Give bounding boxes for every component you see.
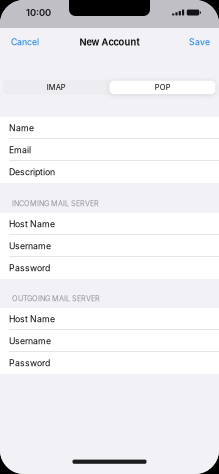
- staticText: Cancel: [11, 37, 39, 47]
- button[interactable]: Password: [0, 257, 219, 279]
- button[interactable]: IMAP: [3, 80, 109, 95]
- staticText: Name: [9, 123, 34, 133]
- staticText: New Account: [79, 36, 139, 48]
- staticText: INCOMING MAIL SERVER: [12, 199, 99, 208]
- button[interactable]: Password: [0, 352, 219, 374]
- staticText: Password: [9, 358, 50, 368]
- staticText: POP: [155, 83, 171, 92]
- staticText: Email: [9, 145, 31, 155]
- button[interactable]: Username: [0, 235, 219, 257]
- staticText: Save: [189, 37, 210, 47]
- staticText: Username: [9, 336, 51, 346]
- button[interactable]: Cancel: [0, 28, 47, 56]
- button[interactable]: Host Name: [0, 308, 219, 330]
- button[interactable]: Email: [0, 139, 219, 161]
- button[interactable]: Host Name: [0, 213, 219, 235]
- staticText: IMAP: [47, 83, 66, 92]
- button[interactable]: Username: [0, 330, 219, 352]
- staticText: Username: [9, 241, 51, 251]
- button[interactable]: Save: [181, 28, 219, 56]
- staticText: Password: [9, 263, 50, 273]
- button[interactable]: POP: [109, 80, 216, 95]
- button[interactable]: Description: [0, 161, 219, 183]
- staticText: Host Name: [9, 314, 55, 324]
- staticText: 10:00: [26, 7, 51, 18]
- button[interactable]: Name: [0, 117, 219, 139]
- staticText: OUTGOING MAIL SERVER: [12, 294, 100, 303]
- staticText: Host Name: [9, 219, 55, 229]
- staticText: Description: [9, 167, 55, 177]
